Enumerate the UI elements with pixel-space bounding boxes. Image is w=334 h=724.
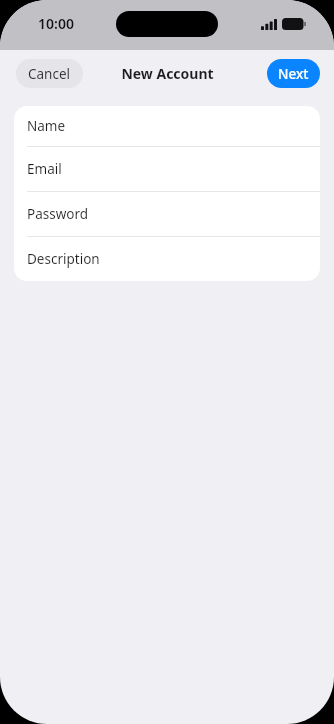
- button[interactable]: Next: [267, 59, 320, 88]
- button[interactable]: Name: [14, 106, 320, 146]
- button[interactable]: Description: [14, 237, 320, 281]
- staticText: Password: [27, 205, 89, 223]
- staticText: Name: [27, 117, 66, 135]
- staticText: Description: [27, 250, 100, 268]
- button[interactable]: Email: [14, 147, 320, 191]
- staticText: 10:00: [38, 14, 74, 33]
- staticText: Cancel: [28, 65, 71, 83]
- button[interactable]: Password: [14, 192, 320, 236]
- button[interactable]: Cancel: [16, 59, 83, 88]
- staticText: New Account: [121, 64, 214, 83]
- staticText: Next: [278, 65, 309, 83]
- staticText: Email: [27, 160, 62, 178]
